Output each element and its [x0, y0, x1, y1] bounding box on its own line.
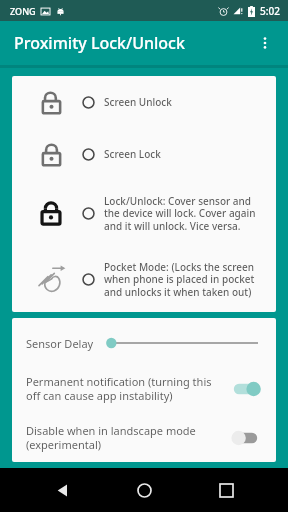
staticText: Screen Lock — [104, 147, 161, 161]
staticText: Pocket Mode: (Locks the screen when phon… — [104, 260, 264, 299]
staticText: Sensor Delay — [26, 336, 94, 351]
staticText: Screen Unlock — [104, 95, 172, 109]
button[interactable]: Screen Lock — [12, 128, 276, 180]
button[interactable]: Sensor Delay — [12, 330, 276, 356]
button[interactable]: Screen Unlock — [12, 76, 276, 128]
button[interactable]: Home — [124, 470, 164, 510]
button[interactable]: Pocket Mode: (Locks the screen when phon… — [12, 246, 276, 312]
button[interactable]: More options — [248, 26, 282, 60]
staticText: 5:02 — [260, 4, 280, 18]
staticText: Disable when in landscape mode (experime… — [26, 423, 224, 452]
button[interactable]: Recent apps — [206, 470, 246, 510]
staticText: Permanent notification (turning this off… — [26, 374, 224, 403]
staticText: Lock/Unlock: Cover sensor and the device… — [104, 194, 264, 233]
staticText: Proximity Lock/Unlock — [14, 32, 185, 54]
button[interactable]: Back — [42, 470, 82, 510]
button[interactable]: Permanent notification (turning this off… — [12, 370, 276, 407]
button[interactable]: Disable when in landscape mode (experime… — [12, 419, 276, 456]
button[interactable]: Lock/Unlock: Cover sensor and the device… — [12, 180, 276, 246]
staticText: ZONG — [10, 5, 36, 17]
